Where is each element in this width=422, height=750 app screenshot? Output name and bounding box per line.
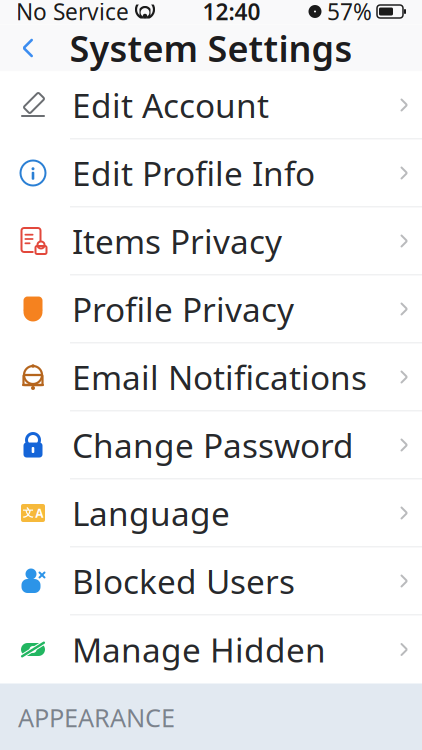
staticText: No Service [16,0,129,26]
staticText: Change Password [72,423,354,467]
staticText: Edit Profile Info [72,151,315,195]
button[interactable]: Blocked Users [0,547,422,615]
staticText: A [35,505,43,521]
staticText: Blocked Users [72,559,295,603]
button[interactable]: Email Notifications [0,343,422,411]
staticText: Items Privacy [72,219,282,263]
button[interactable]: Edit Profile Info [0,139,422,207]
staticText: 12:40 [202,0,260,26]
button[interactable]: 文 [0,479,422,547]
button[interactable]: Manage Hidden [0,615,422,683]
button[interactable]: Change Password [0,411,422,479]
staticText: Profile Privacy [72,287,294,331]
button[interactable]: Profile Privacy [0,275,422,343]
staticText: Manage Hidden [72,627,326,672]
button[interactable]: Items Privacy [0,207,422,275]
staticText: Email Notifications [72,355,367,399]
staticText: APPEARANCE [18,701,175,734]
button[interactable]: Edit Account [0,71,422,139]
staticText: 57% [327,0,372,26]
staticText: Language [72,491,230,535]
staticText: 文 [23,506,34,519]
button[interactable]: Back [6,26,50,70]
staticText: Edit Account [72,83,269,127]
staticText: System Settings [69,24,352,72]
